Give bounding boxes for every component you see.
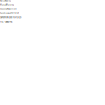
staticText: FTC-3880-AS [0, 21, 12, 23]
staticText: Synchronized 10/13/20 [0, 12, 19, 14]
staticText: Seasonal Adjustment [0, 8, 17, 10]
staticText: Synchronized 10/13/20 [0, 16, 21, 19]
staticText: Manual Watering [0, 4, 14, 6]
staticText: Manual Watering [0, 0, 11, 2]
